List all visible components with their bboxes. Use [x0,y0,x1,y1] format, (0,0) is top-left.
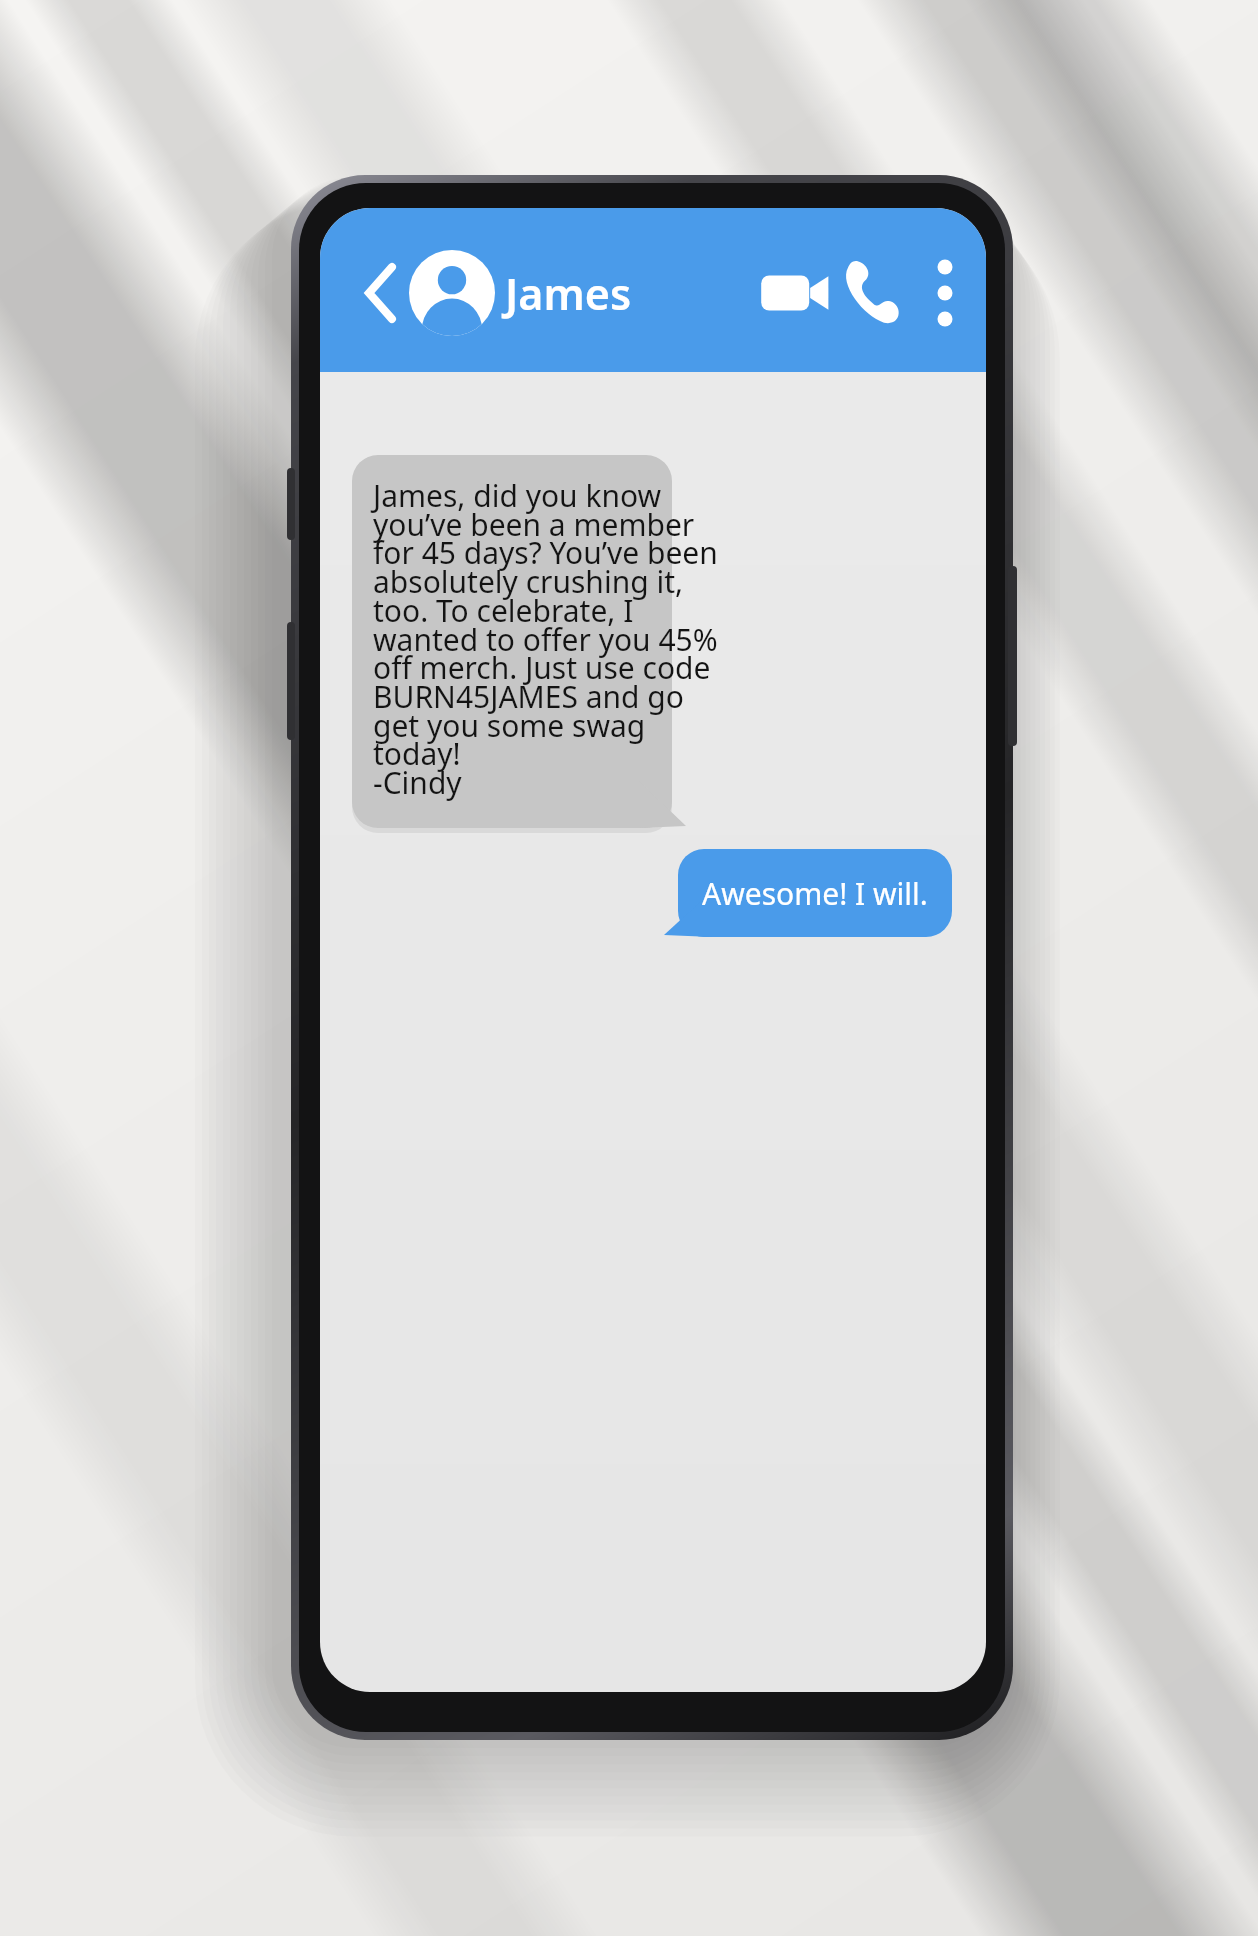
button[interactable]: Incoming message from Cindy [352,455,686,836]
button[interactable]: Back [340,248,420,344]
button[interactable]: Sent message: Awesome! I will. [664,849,952,937]
button[interactable]: James, contact [424,248,700,344]
button[interactable]: More options [912,248,980,344]
button[interactable]: Call [836,248,908,344]
button[interactable]: Video call [752,248,832,344]
